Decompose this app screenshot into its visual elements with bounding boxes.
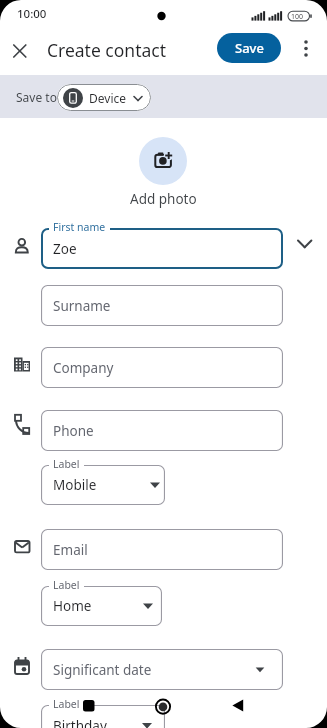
staticText: Label bbox=[53, 697, 80, 711]
button[interactable] bbox=[139, 137, 187, 185]
staticText: Zoe bbox=[53, 240, 77, 258]
staticText: First name bbox=[53, 220, 106, 234]
button[interactable]: Company bbox=[41, 347, 283, 388]
staticText: Surname bbox=[53, 297, 111, 315]
button[interactable]: Significant date bbox=[41, 649, 283, 690]
staticText: 100 bbox=[291, 12, 304, 22]
button[interactable]: Phone bbox=[41, 410, 283, 451]
button[interactable] bbox=[8, 39, 36, 63]
button[interactable]: Email bbox=[41, 529, 283, 570]
staticText: Company bbox=[53, 359, 114, 377]
staticText: Device bbox=[89, 90, 127, 106]
button[interactable]: Birthday bbox=[41, 705, 165, 728]
staticText: Save to bbox=[16, 89, 57, 105]
staticText: Significant date bbox=[53, 661, 152, 679]
button[interactable]: Save bbox=[217, 33, 281, 63]
staticText: Save bbox=[235, 39, 264, 57]
button[interactable]: Surname bbox=[41, 285, 283, 326]
staticText: 10:00 bbox=[17, 6, 47, 22]
staticText: Add photo bbox=[130, 190, 197, 208]
staticText: Email bbox=[53, 541, 88, 559]
staticText: Phone bbox=[53, 422, 94, 440]
button[interactable]: Mobile bbox=[41, 465, 165, 505]
button[interactable] bbox=[296, 38, 316, 60]
staticText: Create contact bbox=[47, 38, 167, 62]
button[interactable] bbox=[292, 234, 318, 260]
staticText: Label bbox=[53, 578, 80, 592]
button[interactable]: Device bbox=[57, 84, 151, 111]
staticText: Birthday bbox=[53, 717, 107, 728]
staticText: Home bbox=[53, 597, 92, 615]
button[interactable]: Zoe bbox=[41, 228, 283, 269]
button[interactable]: Home bbox=[41, 586, 162, 626]
staticText: Label bbox=[53, 457, 80, 471]
staticText: Mobile bbox=[53, 476, 97, 494]
